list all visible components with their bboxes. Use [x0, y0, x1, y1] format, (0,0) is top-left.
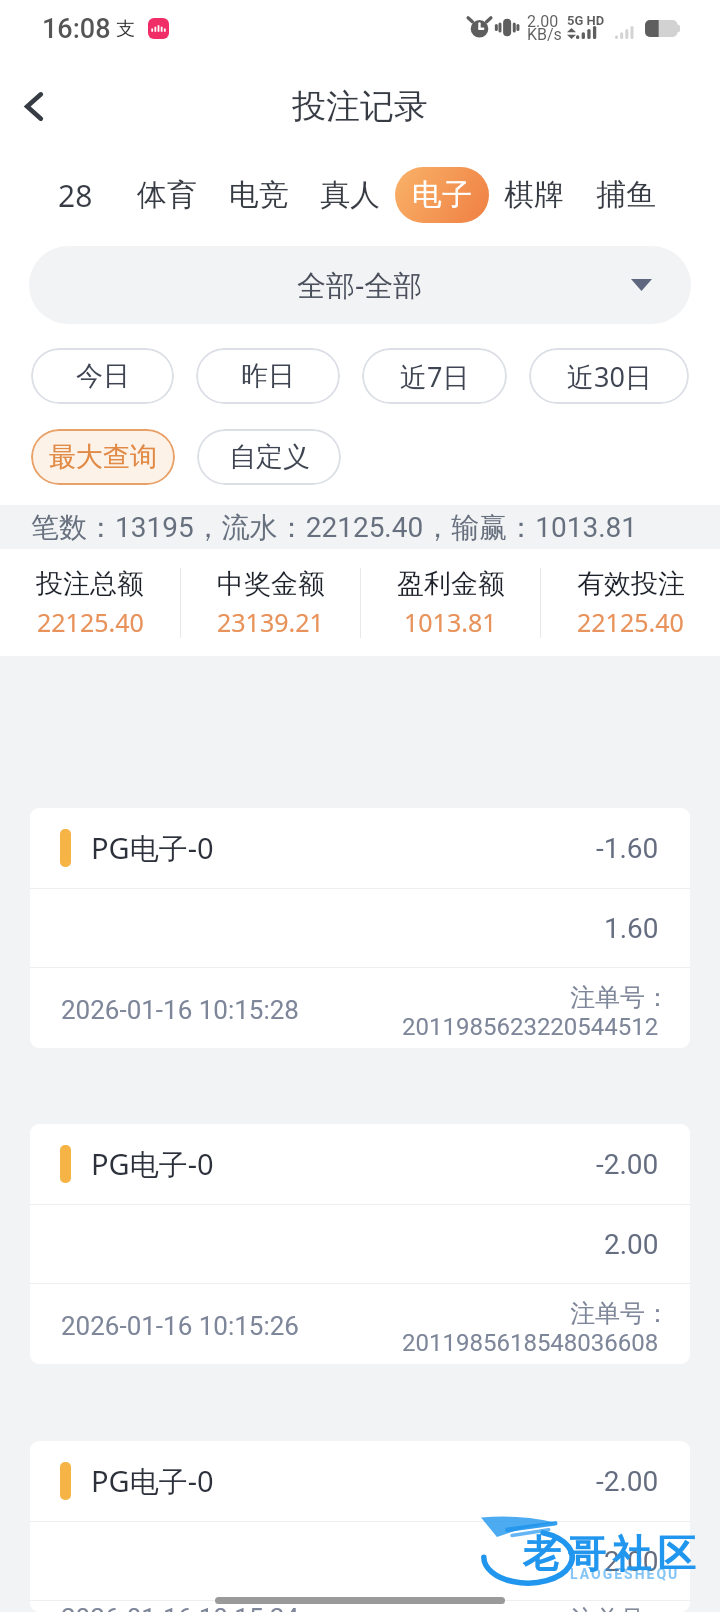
staticText: 16:08	[42, 13, 111, 45]
staticText: 1013.81	[404, 605, 497, 639]
staticText: 投注记录	[292, 85, 428, 128]
button[interactable]: 棋牌	[487, 167, 581, 223]
staticText: 有效投注	[577, 567, 685, 601]
staticText: 捕鱼	[596, 176, 656, 214]
staticText: 22125.40	[577, 605, 684, 639]
staticText: LAOGESHEQU	[570, 1566, 680, 1582]
button[interactable]: 有效投注	[541, 567, 720, 639]
staticText: 笔数：13195，流水：22125.40，输赢：1013.81	[31, 510, 638, 545]
button[interactable]: PG电子-0	[30, 1441, 690, 1612]
staticText: 昨日	[241, 359, 295, 393]
button[interactable]: 28	[28, 167, 122, 223]
staticText: 近30日	[567, 358, 652, 395]
staticText: 注单号：	[570, 1298, 670, 1329]
staticText: 今日	[76, 359, 130, 393]
staticText: 真人	[320, 176, 380, 214]
button[interactable]: 最大查询	[31, 429, 175, 485]
button[interactable]: 电竞	[212, 167, 306, 223]
staticText: 全部-全部	[297, 265, 423, 305]
staticText: PG电子-0	[91, 1144, 214, 1184]
button[interactable]: PG电子-0	[30, 1124, 690, 1364]
button[interactable]: 全部-全部	[29, 246, 691, 324]
staticText: -2.00	[596, 1148, 659, 1181]
staticText: 2026-01-16 10:15:24	[61, 1603, 299, 1612]
staticText: 体育	[137, 176, 197, 214]
button[interactable]: 捕鱼	[579, 167, 673, 223]
button[interactable]: 电子	[395, 167, 489, 223]
staticText: 支	[116, 17, 135, 41]
button[interactable]: 自定义	[197, 429, 341, 485]
staticText: 中奖金额	[217, 567, 325, 601]
button[interactable]: 近30日	[529, 348, 689, 404]
staticText: 2.00	[604, 1545, 659, 1578]
button[interactable]: 近7日	[362, 348, 507, 404]
staticText: 2026-01-16 10:15:26	[61, 1311, 299, 1341]
staticText: 2.00	[604, 1228, 659, 1261]
staticText: 电子	[412, 176, 472, 214]
button[interactable]: PG电子-0	[30, 808, 690, 1048]
button[interactable]: 盈利金额	[361, 567, 540, 639]
staticText: -2.00	[596, 1465, 659, 1498]
staticText: 2011985618548036608	[402, 1329, 659, 1357]
staticText: 投注总额	[36, 567, 144, 601]
staticText: 1.60	[604, 912, 659, 945]
staticText: 注单号：	[570, 1604, 670, 1612]
button[interactable]: 真人	[303, 167, 397, 223]
button[interactable]: 投注总额	[0, 567, 180, 639]
staticText: 2026-01-16 10:15:28	[61, 995, 299, 1025]
staticText: PG电子-0	[91, 828, 214, 868]
staticText: 棋牌	[504, 176, 564, 214]
staticText: 2.00	[527, 12, 559, 31]
staticText: 23139.21	[217, 605, 324, 639]
button[interactable]: Back	[0, 70, 64, 142]
staticText: -1.60	[596, 832, 659, 865]
staticText: 近7日	[400, 358, 470, 395]
staticText: 最大查询	[49, 440, 157, 474]
button[interactable]: 体育	[120, 167, 214, 223]
staticText: 自定义	[229, 440, 310, 474]
staticText: 老哥社区	[519, 1530, 699, 1578]
staticText: PG电子-0	[91, 1461, 214, 1501]
staticText: 注单号：	[570, 982, 670, 1013]
button[interactable]: 今日	[31, 348, 174, 404]
button[interactable]: 中奖金额	[181, 567, 360, 639]
button[interactable]: 昨日	[196, 348, 340, 404]
staticText: KB/s	[527, 25, 562, 44]
staticText: 电竞	[229, 176, 289, 214]
staticText: 22125.40	[37, 605, 144, 639]
staticText: 盈利金额	[397, 567, 505, 601]
staticText: 28	[58, 175, 93, 216]
staticText: 2011985623220544512	[402, 1013, 659, 1041]
staticText: 5G HD	[567, 13, 605, 28]
